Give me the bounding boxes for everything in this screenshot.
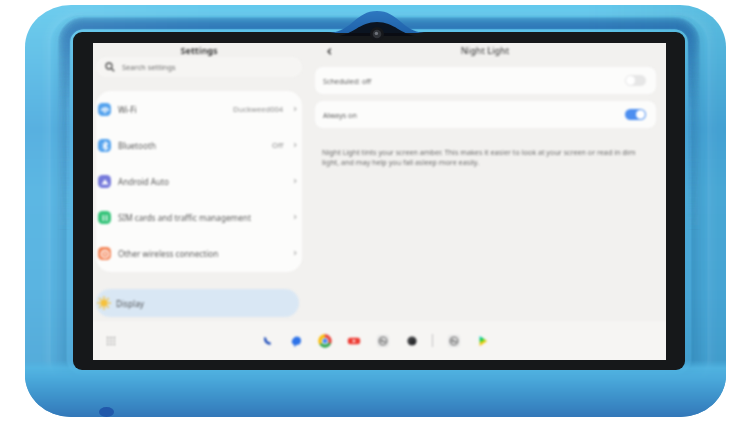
button[interactable]: Bluetooth [96, 127, 302, 163]
staticText: Night Light [319, 44, 651, 56]
button[interactable]: Phone [258, 332, 275, 349]
staticText: Night Light tints your screen amber. Thi… [322, 147, 654, 167]
button[interactable]: Wi-Fi [96, 91, 302, 127]
button[interactable]: SIM cards and traffic management [96, 199, 302, 235]
staticText: Other wireless connection [118, 248, 219, 259]
staticText: Scheduled: off [323, 76, 372, 86]
staticText: Android Auto [118, 176, 169, 187]
staticText: Search settings [122, 62, 176, 72]
button[interactable]: YouTube [345, 332, 362, 349]
button[interactable]: Settings [374, 332, 391, 349]
button[interactable]: Search settings [96, 57, 302, 77]
staticText: Duckweed004 [233, 104, 284, 114]
button[interactable]: Android Auto [96, 163, 302, 199]
button[interactable]: Play Store [474, 332, 491, 349]
button[interactable]: Chrome [316, 332, 333, 349]
button[interactable]: Settings [445, 332, 462, 349]
staticText: Display [116, 298, 144, 309]
staticText: Wi-Fi [118, 104, 137, 115]
button[interactable]: Always on [315, 101, 656, 128]
button[interactable]: Back [321, 43, 337, 59]
staticText: Off [272, 140, 284, 150]
button[interactable]: All apps [103, 333, 119, 349]
staticText: Settings [93, 44, 305, 56]
button[interactable]: Display [96, 289, 299, 317]
staticText: SIM cards and traffic management [118, 212, 251, 223]
button[interactable]: Other wireless connection [96, 235, 302, 271]
button[interactable]: Scheduled: off [315, 67, 656, 94]
button[interactable]: App [403, 332, 420, 349]
button[interactable]: Messages [287, 332, 304, 349]
staticText: Always on [323, 110, 357, 120]
staticText: Bluetooth [118, 140, 156, 151]
